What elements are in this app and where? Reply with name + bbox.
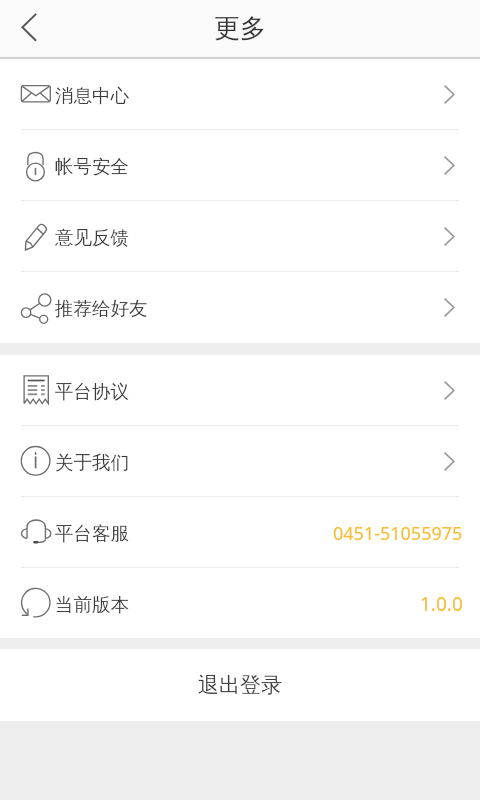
button[interactable]: 意见反馈 — [0, 201, 480, 272]
staticText: 平台客服 — [55, 522, 129, 545]
button[interactable]: 当前版本 — [0, 568, 480, 638]
button[interactable]: 帐号安全 — [0, 130, 480, 201]
staticText: 1.0.0 — [420, 591, 463, 617]
button[interactable]: 推荐给好友 — [0, 272, 480, 343]
staticText: 平台协议 — [55, 380, 129, 403]
button[interactable]: 平台客服 — [0, 497, 480, 568]
button[interactable]: 关于我们 — [0, 426, 480, 497]
button[interactable]: 消息中心 — [0, 59, 480, 130]
staticText: 关于我们 — [55, 451, 129, 474]
button[interactable]: 退出登录 — [0, 649, 480, 721]
staticText: 意见反馈 — [55, 226, 129, 249]
staticText: 帐号安全 — [55, 155, 129, 178]
staticText: 消息中心 — [55, 84, 129, 107]
staticText: 0451-51055975 — [333, 521, 463, 546]
staticText: 更多 — [214, 12, 266, 45]
button[interactable]: Back — [0, 0, 56, 57]
staticText: 当前版本 — [55, 593, 129, 616]
staticText: 退出登录 — [198, 672, 282, 698]
staticText: 推荐给好友 — [55, 297, 148, 320]
button[interactable]: 平台协议 — [0, 355, 480, 426]
